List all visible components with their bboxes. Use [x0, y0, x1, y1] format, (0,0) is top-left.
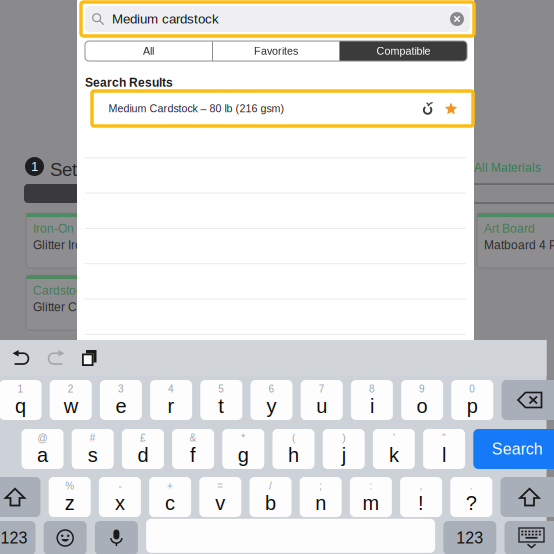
button[interactable]: % — [49, 477, 91, 517]
button[interactable]: : — [350, 477, 392, 517]
staticText: c — [165, 492, 175, 514]
staticText: ! — [418, 492, 424, 514]
button[interactable]: 4 — [150, 380, 192, 420]
button[interactable]: @ — [21, 429, 63, 469]
staticText: g — [238, 444, 249, 466]
button[interactable]: 5 — [200, 380, 242, 420]
button[interactable]: Dictate — [95, 521, 138, 554]
staticText: Glitter Iron-O — [33, 238, 102, 252]
staticText: s — [88, 444, 98, 466]
staticText: p — [467, 395, 478, 417]
button[interactable]: - — [99, 477, 141, 517]
button[interactable]: Shift — [500, 477, 554, 517]
staticText: 5 — [218, 383, 224, 395]
button[interactable]: Medium cardstock — [81, 2, 474, 36]
button[interactable]: Compatible — [340, 41, 467, 61]
staticText: f — [190, 444, 196, 466]
button[interactable]: * — [222, 429, 264, 469]
staticText: * — [241, 432, 245, 444]
button[interactable]: Hide Keyboard — [504, 521, 554, 554]
staticText: Medium cardstock — [112, 12, 219, 26]
staticText: 6 — [268, 383, 274, 395]
staticText: - — [118, 480, 121, 492]
staticText: q — [15, 395, 26, 417]
staticText: w — [64, 395, 78, 417]
button[interactable]: Search — [473, 429, 554, 469]
button[interactable]: 8 — [351, 380, 393, 420]
staticText: All — [143, 45, 154, 57]
button[interactable]: 3 — [100, 380, 142, 420]
staticText: @ — [37, 432, 47, 444]
button[interactable] — [146, 521, 435, 554]
staticText: 1 — [31, 159, 38, 174]
button[interactable]: Medium Cardstock – 80 lb (216 gsm) — [92, 91, 473, 126]
staticText: Set m — [50, 159, 98, 180]
button[interactable]: ' — [373, 429, 415, 469]
staticText: % — [65, 480, 74, 492]
staticText: Art Board — [484, 222, 535, 235]
button[interactable]: 6 — [250, 380, 292, 420]
button[interactable]: Shift — [0, 477, 40, 517]
button[interactable]: # — [72, 429, 114, 469]
button[interactable]: Redo — [38, 340, 72, 376]
staticText: 1 — [17, 383, 23, 395]
staticText: 7 — [319, 383, 325, 395]
staticText: # — [90, 432, 96, 444]
staticText: 9 — [419, 383, 425, 395]
staticText: r — [168, 395, 175, 417]
staticText: Search — [492, 440, 543, 458]
staticText: j — [342, 444, 346, 466]
button[interactable]: / — [249, 477, 291, 517]
staticText: d — [137, 444, 148, 466]
button[interactable]: 9 — [401, 380, 443, 420]
staticText: i — [370, 395, 374, 417]
button[interactable]: 0 — [451, 380, 493, 420]
staticText: Cardstock — [33, 284, 88, 297]
staticText: n — [315, 492, 326, 514]
staticText: Glitter Cards — [33, 300, 101, 314]
staticText: b — [265, 492, 276, 514]
button[interactable]: Emoji — [44, 521, 87, 554]
button[interactable]: . — [450, 477, 492, 517]
button[interactable]: + — [149, 477, 191, 517]
button[interactable]: Paste — [72, 340, 106, 376]
staticText: a — [37, 444, 48, 466]
staticText: Search Results — [85, 76, 173, 89]
staticText: t — [218, 395, 224, 417]
button[interactable]: ; — [300, 477, 342, 517]
staticText: ) — [342, 432, 345, 444]
button[interactable]: 123 — [443, 521, 496, 554]
staticText: ? — [466, 492, 477, 514]
button[interactable]: 2 — [50, 380, 92, 420]
button[interactable]: = — [199, 477, 241, 517]
staticText: 123 — [0, 529, 27, 547]
staticText: h — [288, 444, 299, 466]
button[interactable]: Delete — [501, 380, 554, 420]
button[interactable]: 7 — [301, 380, 343, 420]
button[interactable]: 1 — [0, 380, 41, 420]
button[interactable]: £ — [122, 429, 164, 469]
staticText: ' — [393, 432, 395, 444]
staticText: x — [115, 492, 125, 514]
staticText: 123 — [456, 529, 483, 547]
staticText: m — [362, 492, 379, 514]
button[interactable]: , — [400, 477, 442, 517]
staticText: & — [190, 432, 197, 444]
button[interactable]: & — [172, 429, 214, 469]
staticText: . — [470, 480, 473, 492]
button[interactable]: " — [423, 429, 465, 469]
button[interactable]: Undo — [4, 340, 38, 376]
staticText: £ — [140, 432, 146, 444]
staticText: = — [217, 480, 223, 492]
button[interactable]: All — [85, 41, 212, 61]
staticText: , — [420, 480, 423, 492]
staticText: Iron-On — [33, 222, 74, 235]
button[interactable]: ( — [272, 429, 314, 469]
button[interactable]: Favorites — [213, 41, 339, 61]
button[interactable]: ) — [323, 429, 365, 469]
staticText: Matboard 4 Ply — [484, 238, 554, 252]
staticText: Medium Cardstock – 80 lb (216 gsm) — [108, 102, 284, 114]
button[interactable]: 123 — [0, 521, 35, 554]
staticText: 8 — [369, 383, 375, 395]
